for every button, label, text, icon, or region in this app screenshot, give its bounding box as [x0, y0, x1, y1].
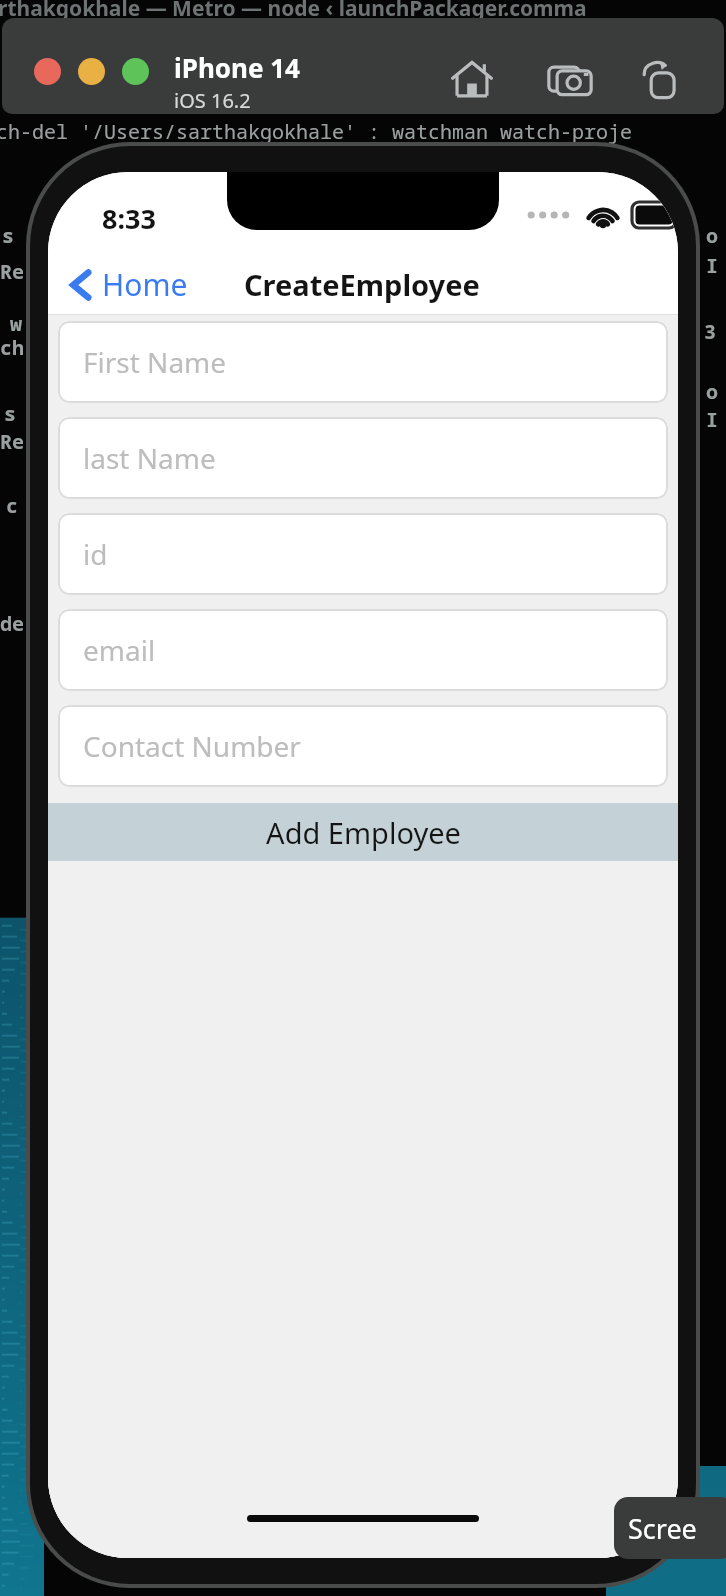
staticText: Scree	[628, 1510, 697, 1547]
staticText: last Name	[83, 439, 216, 477]
staticText: ch-del '/Users/sarthakgokhale' : watchma…	[0, 118, 632, 145]
staticText: Re	[0, 428, 24, 455]
staticText: id	[83, 535, 108, 573]
staticText: Home	[102, 264, 188, 305]
staticText: o	[706, 378, 718, 405]
button[interactable]: Rotate device	[630, 50, 690, 110]
staticText: iOS 16.2	[174, 87, 251, 114]
button[interactable]	[78, 58, 105, 85]
staticText: rthakgokhale — Metro — node ‹ launchPack…	[0, 0, 587, 23]
staticText: Contact Number	[83, 727, 301, 765]
staticText: I	[706, 406, 718, 433]
button[interactable]: email	[58, 609, 668, 691]
button[interactable]: Add Employee	[48, 803, 678, 861]
staticText: de	[0, 610, 24, 637]
staticText: email	[83, 631, 156, 669]
button[interactable]: Contact Number	[58, 705, 668, 787]
button[interactable]: id	[58, 513, 668, 595]
staticText: I	[706, 252, 718, 279]
staticText: 8:33	[102, 200, 156, 237]
staticText: w	[10, 310, 22, 337]
button[interactable]: Home	[442, 50, 502, 110]
staticText: s	[4, 400, 16, 427]
staticText: iPhone 14	[174, 50, 300, 85]
staticText: First Name	[83, 343, 227, 381]
button[interactable]: Home	[60, 260, 196, 309]
staticText: Add Employee	[266, 813, 461, 852]
button[interactable]: last Name	[58, 417, 668, 499]
staticText: ch	[0, 334, 24, 361]
button[interactable]: First Name	[58, 321, 668, 403]
button[interactable]	[34, 58, 61, 85]
staticText: o	[706, 222, 718, 249]
staticText: c	[6, 492, 18, 519]
staticText: s /	[2, 222, 38, 249]
staticText: CreateEmployee	[244, 265, 480, 304]
staticText: 3	[704, 318, 716, 345]
button[interactable]: Screenshot	[540, 50, 600, 110]
staticText: Re	[0, 258, 24, 285]
button[interactable]	[122, 58, 149, 85]
button[interactable]: Screenshot notification	[614, 1497, 726, 1559]
